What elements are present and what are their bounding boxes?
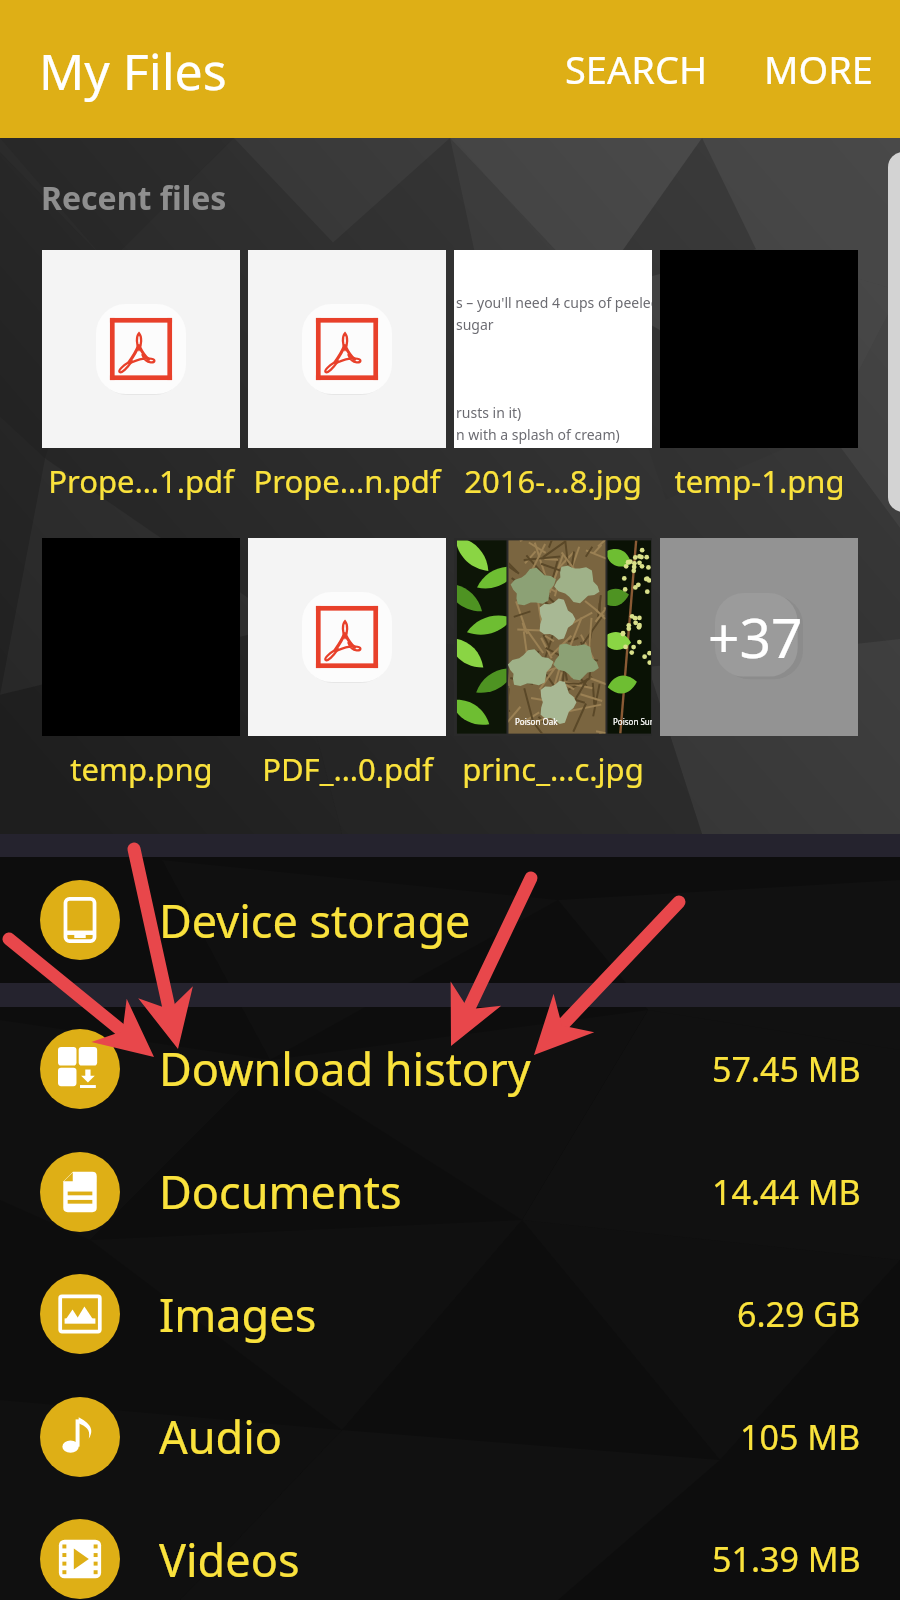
staticText: MORE: [764, 43, 873, 95]
staticText: sugar: [456, 315, 494, 334]
staticText: 14.44 MB: [712, 1169, 861, 1215]
staticText: Images: [159, 1284, 317, 1345]
button[interactable]: Videos: [0, 1498, 900, 1600]
staticText: SEARCH: [565, 43, 708, 95]
button[interactable]: Device storage: [0, 857, 900, 983]
staticText: Prope…n.pdf: [253, 460, 441, 502]
staticText: Download history: [159, 1038, 531, 1099]
staticText: Prope…1.pdf: [48, 460, 234, 502]
staticText: 2016-…8.jpg: [464, 460, 642, 502]
button[interactable]: s – you'll need 4 cups of peeled, co: [454, 250, 652, 448]
staticText: Audio: [159, 1406, 283, 1467]
staticText: +37: [708, 599, 803, 674]
staticText: s – you'll need 4 cups of peeled, co: [456, 293, 652, 312]
staticText: temp-1.png: [674, 460, 845, 502]
staticText: PDF_…0.pdf: [262, 748, 433, 790]
staticText: Videos: [159, 1529, 300, 1590]
button[interactable]: Download history: [0, 1007, 900, 1130]
staticText: Poison Sum: [613, 716, 652, 727]
button[interactable]: [248, 250, 446, 448]
staticText: Poison Oak: [515, 716, 558, 727]
staticText: 51.39 MB: [712, 1536, 861, 1582]
staticText: 6.29 GB: [737, 1291, 861, 1337]
staticText: Recent files: [41, 176, 227, 220]
button[interactable]: +37: [660, 538, 858, 736]
button[interactable]: MORE: [736, 17, 900, 121]
button[interactable]: [42, 250, 240, 448]
staticText: temp.png: [70, 748, 213, 790]
staticText: 105 MB: [740, 1414, 861, 1460]
button[interactable]: Images: [0, 1253, 900, 1375]
staticText: n with a splash of cream): [456, 425, 620, 444]
button[interactable]: SEARCH: [539, 17, 736, 121]
staticText: princ_…c.jpg: [462, 748, 644, 790]
button[interactable]: [248, 538, 446, 736]
staticText: rusts in it): [456, 403, 522, 422]
staticText: My Files: [39, 37, 227, 105]
button[interactable]: Documents: [0, 1130, 900, 1253]
staticText: Device storage: [159, 890, 471, 951]
button[interactable]: Poison Oak: [454, 538, 652, 736]
button[interactable]: Audio: [0, 1375, 900, 1498]
staticText: 57.45 MB: [712, 1046, 861, 1092]
staticText: Documents: [159, 1161, 402, 1222]
